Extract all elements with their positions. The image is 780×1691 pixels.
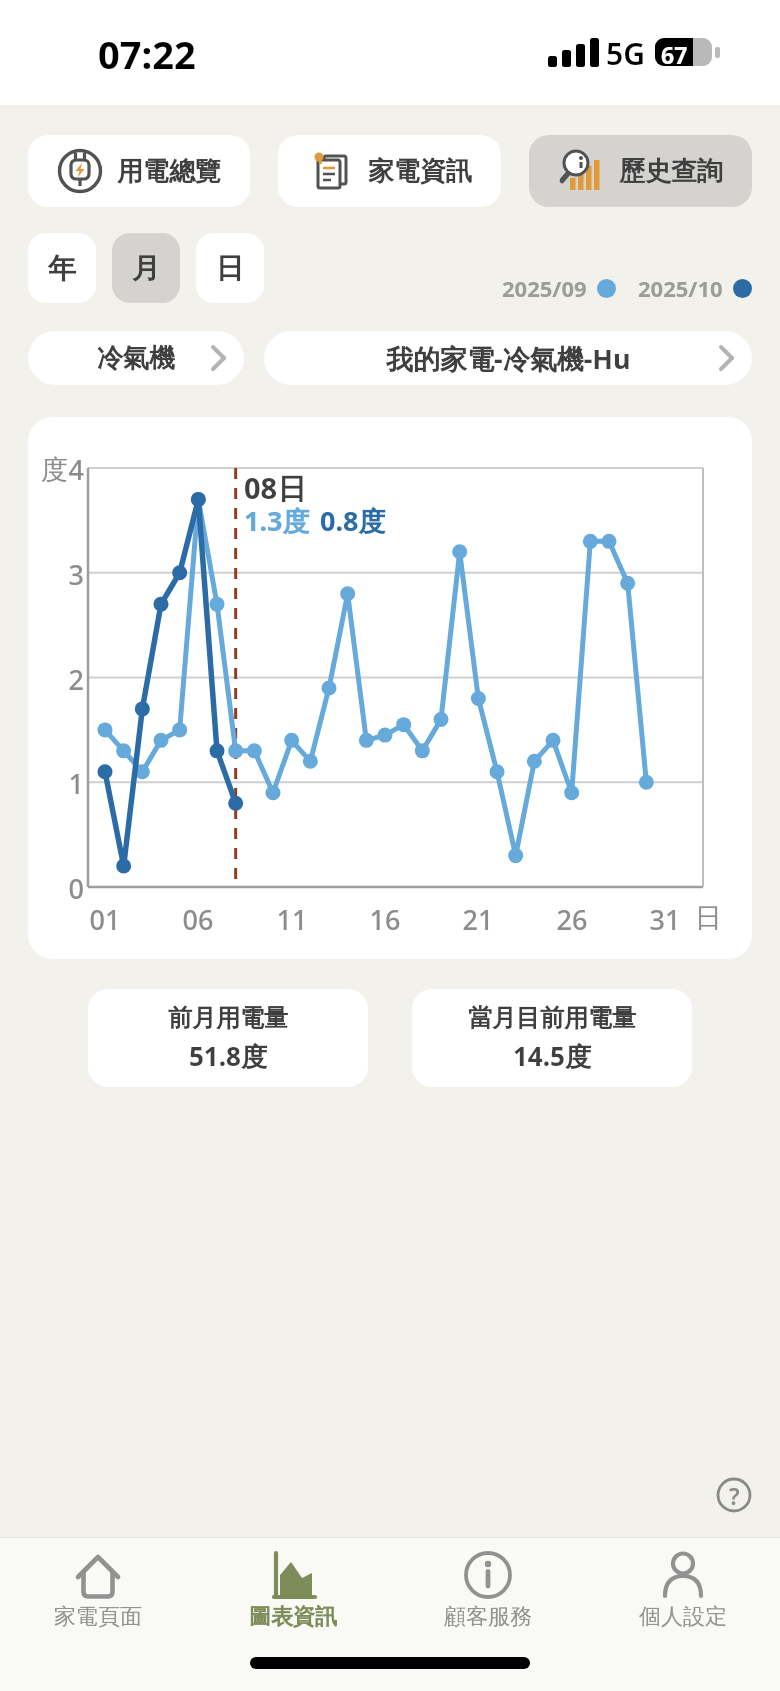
staticText: 顧客服務: [444, 1603, 532, 1631]
staticText: 4: [52, 451, 84, 488]
button[interactable]: 冷氣機: [28, 331, 244, 385]
staticText: 日: [695, 901, 722, 935]
button[interactable]: 前月用電量: [88, 989, 368, 1087]
staticText: 2: [52, 661, 84, 698]
staticText: 06: [176, 901, 220, 938]
button[interactable]: 我的家電-冷氣機-Hu: [264, 331, 752, 385]
staticText: 1.3度: [244, 502, 310, 539]
staticText: 51.8度: [189, 1038, 267, 1074]
button[interactable]: 日: [196, 233, 264, 303]
staticText: 月: [132, 251, 160, 286]
staticText: 冷氣機: [97, 342, 175, 375]
staticText: 家電頁面: [54, 1603, 142, 1631]
staticText: 01: [83, 901, 127, 938]
button[interactable]: 家電資訊: [278, 135, 501, 207]
button[interactable]: 家電頁面: [0, 1538, 195, 1691]
staticText: 3: [52, 556, 84, 593]
staticText: ?: [729, 1480, 740, 1511]
button[interactable]: 歷史查詢: [529, 135, 752, 207]
button[interactable]: ?: [716, 1477, 752, 1513]
button[interactable]: 當月目前用電量: [412, 989, 692, 1087]
staticText: 14.5度: [513, 1038, 591, 1074]
staticText: 我的家電-冷氣機-Hu: [386, 340, 631, 377]
staticText: 圖表資訊: [249, 1603, 337, 1631]
staticText: 日: [216, 251, 244, 286]
staticText: 年: [48, 251, 76, 286]
staticText: 21: [456, 901, 500, 938]
staticText: 2025/10: [638, 273, 723, 303]
button[interactable]: 個人設定: [585, 1538, 780, 1691]
button[interactable]: 顧客服務: [390, 1538, 585, 1691]
staticText: 11: [270, 901, 314, 938]
staticText: 26: [550, 901, 594, 938]
staticText: 0.8度: [320, 502, 386, 539]
staticText: 1: [52, 765, 84, 802]
staticText: 家電資訊: [368, 155, 472, 188]
staticText: 0: [52, 870, 84, 907]
staticText: 前月用電量: [168, 1003, 288, 1033]
staticText: 16: [363, 901, 407, 938]
staticText: 31: [643, 901, 687, 938]
button[interactable]: 年: [28, 233, 96, 303]
staticText: 5G: [606, 33, 645, 74]
button[interactable]: 月: [112, 233, 180, 303]
button[interactable]: 圖表資訊: [195, 1538, 390, 1691]
staticText: 07:22: [98, 28, 196, 80]
staticText: 度: [41, 453, 68, 487]
staticText: 歷史查詢: [619, 155, 723, 188]
staticText: 67: [661, 39, 701, 70]
button[interactable]: 用電總覽: [28, 135, 250, 207]
staticText: 用電總覽: [117, 155, 221, 188]
staticText: 當月目前用電量: [468, 1003, 636, 1033]
staticText: 08日: [244, 468, 307, 508]
staticText: 個人設定: [639, 1603, 727, 1631]
staticText: 2025/09: [502, 273, 587, 303]
